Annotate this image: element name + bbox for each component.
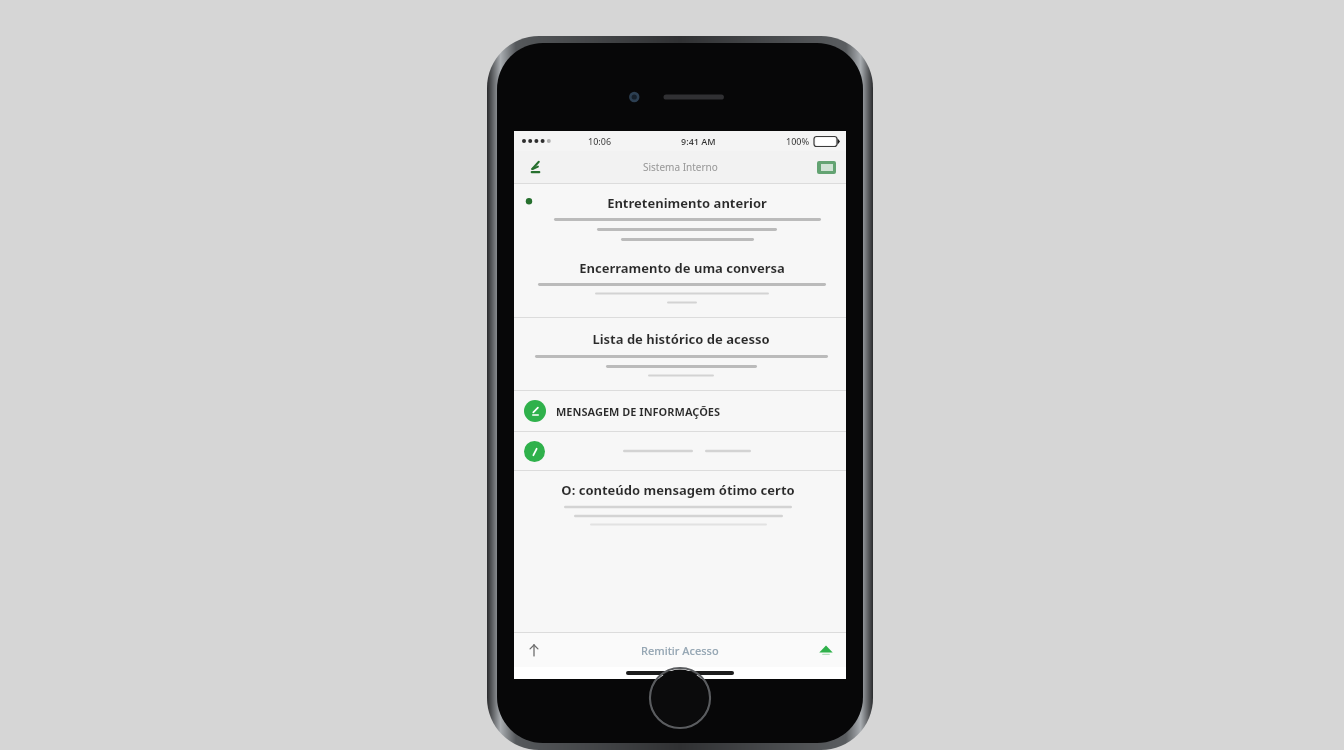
staticText: Remitir Acesso (641, 643, 719, 658)
staticText: 10:06 (588, 135, 612, 147)
button[interactable]: O: conteúdo mensagem ótimo certo (514, 471, 846, 537)
button[interactable]: Account (814, 157, 838, 177)
staticText: O: conteúdo mensagem ótimo certo (561, 481, 795, 499)
staticText: Entretenimento anterior (607, 194, 767, 212)
button[interactable]: Share (522, 638, 546, 662)
button[interactable]: Upload (814, 638, 838, 662)
staticText: Lista de histórico de acesso (592, 330, 770, 348)
button[interactable]: Compose (522, 154, 548, 180)
staticText: 9:41 AM (681, 135, 716, 147)
button[interactable]: MENSAGEM DE INFORMAÇÕES (514, 391, 846, 431)
staticText: Sistema Interno (643, 160, 718, 174)
staticText: 100% (786, 135, 810, 147)
button[interactable]: Entretenimento anterior (514, 184, 846, 251)
staticText: Encerramento de uma conversa (579, 259, 785, 277)
button[interactable]: Encerramento de uma conversa (514, 251, 846, 317)
staticText: MENSAGEM DE INFORMAÇÕES (556, 404, 721, 419)
button[interactable]: Lista de histórico de acesso (514, 318, 846, 390)
button[interactable] (514, 432, 846, 470)
button[interactable]: Remitir Acesso (625, 637, 735, 664)
